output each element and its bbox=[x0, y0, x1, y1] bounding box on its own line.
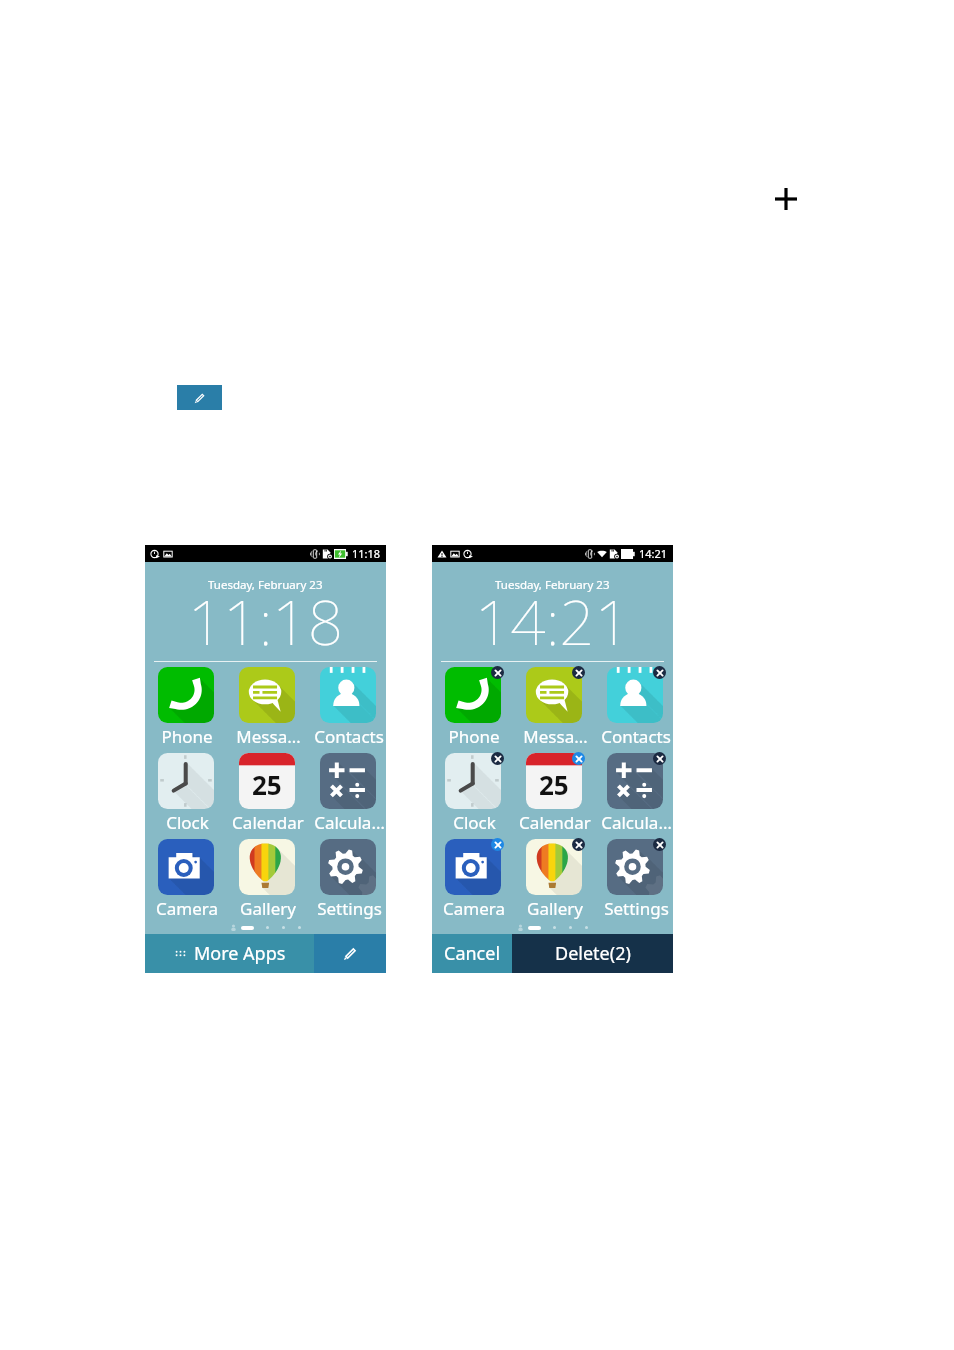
staticText: Settings bbox=[604, 897, 669, 920]
button[interactable]: Remove Calcula… bbox=[653, 752, 666, 765]
button[interactable]: Messa… bbox=[525, 667, 593, 747]
button[interactable]: Phone bbox=[444, 667, 512, 747]
staticText: Calendar bbox=[232, 811, 304, 834]
button[interactable]: Remove Calendar bbox=[572, 752, 585, 765]
button[interactable]: Clock bbox=[157, 753, 225, 833]
staticText: Gallery bbox=[240, 897, 296, 920]
button[interactable]: Edit bbox=[314, 934, 386, 973]
button[interactable]: Add bbox=[770, 183, 802, 215]
button[interactable]: Gallery bbox=[238, 839, 306, 919]
staticText: Tuesday, February 23 bbox=[208, 577, 323, 593]
button[interactable]: Settings bbox=[606, 839, 673, 919]
staticText: Phone bbox=[448, 725, 500, 748]
button[interactable]: Calcula… bbox=[606, 753, 673, 833]
button[interactable]: Remove Phone bbox=[491, 666, 504, 679]
staticText: 14:21 bbox=[475, 579, 631, 663]
button[interactable]: Contacts bbox=[606, 667, 673, 747]
staticText: Settings bbox=[317, 897, 382, 920]
button[interactable]: Gallery bbox=[525, 839, 593, 919]
button[interactable]: Cancel bbox=[432, 934, 512, 973]
button[interactable]: 25 bbox=[525, 753, 593, 833]
button[interactable]: Messa… bbox=[238, 667, 306, 747]
staticText: 14:21 bbox=[639, 546, 668, 561]
staticText: More Apps bbox=[194, 941, 286, 966]
staticText: Camera bbox=[156, 897, 218, 920]
button[interactable]: Remove Camera bbox=[491, 838, 504, 851]
staticText: Messa… bbox=[523, 725, 588, 748]
button[interactable]: Camera bbox=[157, 839, 225, 919]
staticText: Calendar bbox=[519, 811, 591, 834]
staticText: Cancel bbox=[444, 941, 501, 966]
staticText: Phone bbox=[161, 725, 213, 748]
button[interactable]: Remove Clock bbox=[491, 752, 504, 765]
button[interactable]: Calcula… bbox=[319, 753, 386, 833]
staticText: Contacts bbox=[601, 725, 671, 748]
button[interactable]: Edit bbox=[177, 385, 222, 410]
button[interactable]: Delete(2) bbox=[512, 934, 673, 973]
staticText: Delete(2) bbox=[555, 941, 631, 966]
button[interactable]: Remove Gallery bbox=[572, 838, 585, 851]
button[interactable]: Clock bbox=[444, 753, 512, 833]
button[interactable]: Remove Settings bbox=[653, 838, 666, 851]
staticText: Calcula… bbox=[601, 811, 672, 834]
staticText: Camera bbox=[443, 897, 505, 920]
staticText: Clock bbox=[166, 811, 209, 834]
button[interactable]: Remove Contacts bbox=[653, 666, 666, 679]
button[interactable]: Phone bbox=[157, 667, 225, 747]
button[interactable]: More Apps bbox=[145, 934, 314, 973]
staticText: 25 bbox=[252, 767, 282, 802]
staticText: Gallery bbox=[527, 897, 583, 920]
staticText: Clock bbox=[453, 811, 496, 834]
staticText: Calcula… bbox=[314, 811, 385, 834]
button[interactable]: Remove Messa… bbox=[572, 666, 585, 679]
staticText: 11:18 bbox=[188, 579, 344, 663]
button[interactable]: Camera bbox=[444, 839, 512, 919]
button[interactable]: Settings bbox=[319, 839, 386, 919]
button[interactable]: 25 bbox=[238, 753, 306, 833]
button[interactable]: Contacts bbox=[319, 667, 386, 747]
staticText: Messa… bbox=[236, 725, 301, 748]
staticText: Tuesday, February 23 bbox=[495, 577, 610, 593]
staticText: Contacts bbox=[314, 725, 384, 748]
staticText: 25 bbox=[539, 767, 569, 802]
staticText: 11:18 bbox=[352, 546, 381, 561]
